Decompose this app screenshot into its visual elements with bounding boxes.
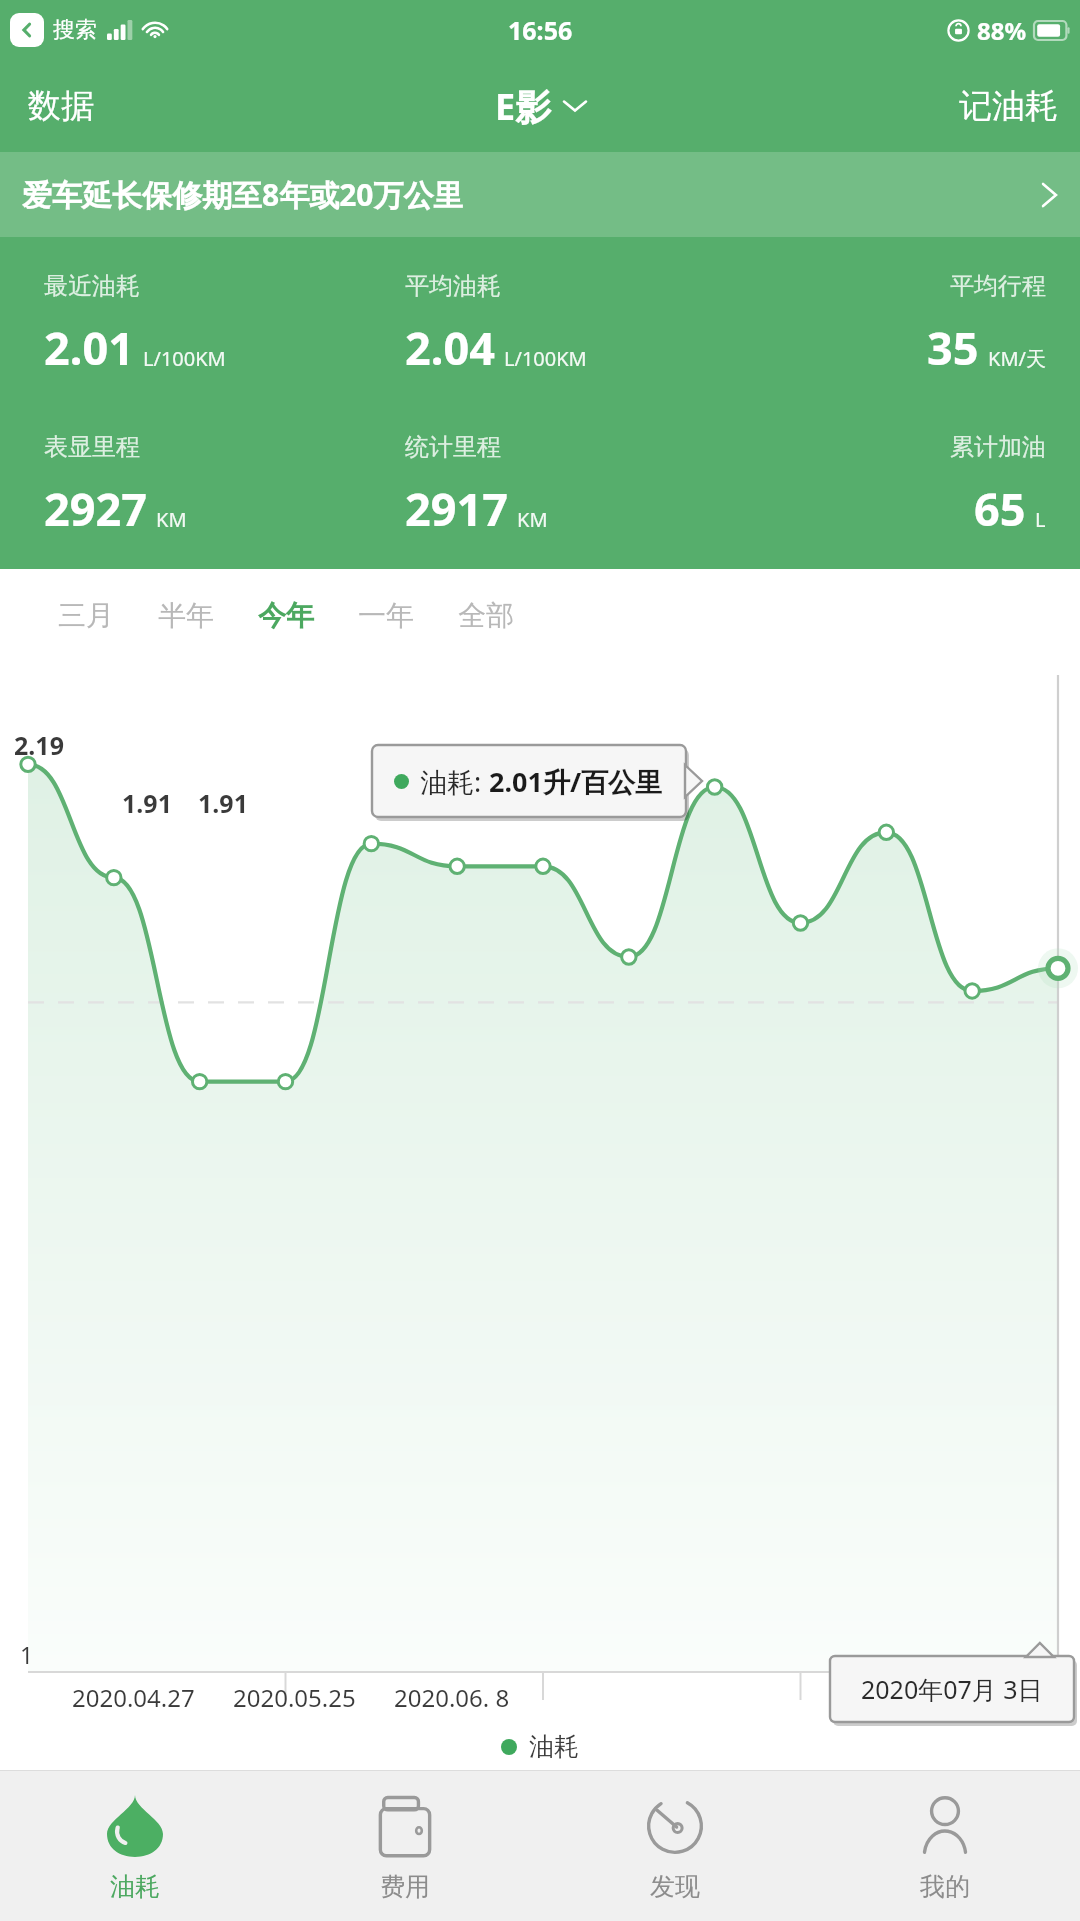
button[interactable]: 今年 <box>236 588 336 643</box>
staticText: 一年 <box>358 598 414 633</box>
staticText: 1.91 <box>122 786 172 820</box>
staticText: 全部 <box>458 598 514 633</box>
staticText: 1.91 <box>198 786 248 820</box>
staticText: 我的 <box>920 1871 970 1902</box>
button[interactable]: 爱车延长保修期至8年或20万公里 <box>0 152 1080 237</box>
staticText: 2020.06. 8 <box>394 1681 510 1714</box>
staticText: 半年 <box>158 598 214 633</box>
button[interactable]: 半年 <box>136 588 236 643</box>
button[interactable]: Back to 搜索 <box>10 13 44 47</box>
staticText: 1 <box>20 1639 34 1670</box>
button[interactable]: 一年 <box>336 588 436 643</box>
button[interactable]: 费用 <box>270 1771 540 1921</box>
staticText: 2927 <box>44 478 147 539</box>
button[interactable]: 记油耗 <box>937 60 1080 152</box>
staticText: KM <box>156 506 187 533</box>
staticText: 费用 <box>380 1871 430 1902</box>
staticText: 平均行程 <box>950 271 1046 301</box>
button[interactable]: 全部 <box>436 588 536 643</box>
staticText: 16:56 <box>508 13 573 47</box>
staticText: 爱车延长保修期至8年或20万公里 <box>22 174 1041 215</box>
staticText: 35 <box>927 317 979 378</box>
button[interactable]: 我的 <box>810 1771 1080 1921</box>
staticText: 油耗 <box>110 1871 160 1902</box>
staticText: E影 <box>495 82 552 131</box>
staticText: 今年 <box>258 598 314 633</box>
staticText: 最近油耗 <box>44 271 140 301</box>
button[interactable]: 三月 <box>36 588 136 643</box>
staticText: 平均油耗 <box>405 271 501 301</box>
staticText: 88% <box>977 14 1027 47</box>
staticText: 搜索 <box>53 16 97 44</box>
button[interactable]: E影 <box>479 60 602 152</box>
staticText: 数据 <box>28 85 94 127</box>
staticText: KM <box>517 506 548 533</box>
staticText: KM/天 <box>988 345 1046 372</box>
staticText: 油耗: <box>420 763 489 800</box>
staticText: 统计里程 <box>405 432 501 462</box>
staticText: 2020.04.27 <box>72 1681 195 1714</box>
button[interactable]: 发现 <box>540 1771 810 1921</box>
staticText: 2917 <box>405 478 508 539</box>
staticText: 2.01 <box>44 317 134 378</box>
staticText: L <box>1035 506 1046 533</box>
staticText: 2020.05.25 <box>233 1681 356 1714</box>
staticText: 三月 <box>58 598 114 633</box>
staticText: 2.04 <box>405 317 495 378</box>
staticText: 2020年07月 3日 <box>861 1672 1043 1706</box>
staticText: 累计加油 <box>950 432 1046 462</box>
staticText: L/100KM <box>504 345 587 372</box>
staticText: 65 <box>974 478 1026 539</box>
staticText: 2.01升/百公里 <box>489 763 663 800</box>
staticText: L/100KM <box>143 345 226 372</box>
button[interactable]: 油耗 <box>0 1771 270 1921</box>
staticText: 2.19 <box>14 728 64 762</box>
staticText: 记油耗 <box>959 85 1058 127</box>
button[interactable]: 数据 <box>0 60 122 152</box>
staticText: 发现 <box>650 1871 700 1902</box>
staticText: 油耗 <box>529 1731 579 1762</box>
staticText: 表显里程 <box>44 432 140 462</box>
